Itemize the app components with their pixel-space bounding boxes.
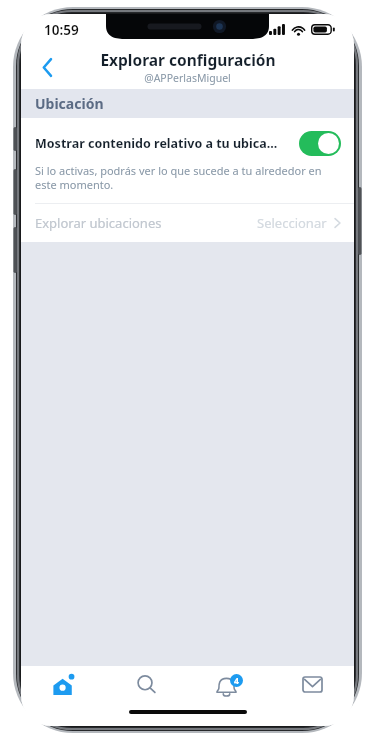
button[interactable]: Buscar (105, 666, 188, 703)
staticText: Mostrar contenido relativo a tu ubica... (35, 135, 293, 152)
button[interactable]: Explorar ubicaciones (21, 204, 354, 242)
button[interactable]: Mostrar contenido relativo a tu ubica... (21, 118, 354, 156)
staticText: Si lo activas, podrás ver lo que sucede … (35, 163, 338, 193)
staticText: 4 (234, 675, 239, 687)
staticText: 10:59 (44, 21, 79, 39)
staticText: Ubicación (35, 94, 104, 113)
staticText: Seleccionar (257, 214, 327, 232)
button[interactable]: Activar ubicación (299, 131, 341, 156)
staticText: @APPerlasMiguel (144, 71, 231, 85)
staticText: Explorar configuración (100, 49, 276, 70)
button[interactable]: Notificaciones, 4 nuevas (188, 666, 271, 703)
staticText: Explorar ubicaciones (35, 214, 257, 232)
button[interactable]: Inicio (21, 666, 105, 703)
button[interactable]: Atrás (27, 47, 67, 87)
button[interactable]: Mensajes (271, 666, 354, 703)
